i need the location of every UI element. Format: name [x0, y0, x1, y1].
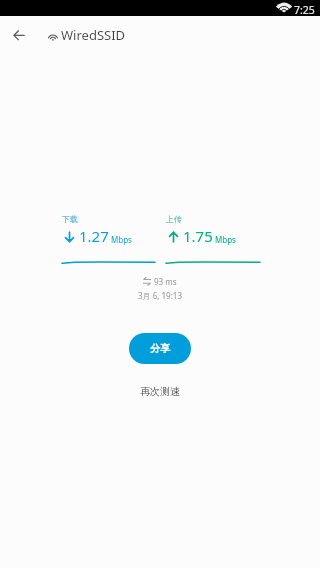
staticText: 1.27 — [79, 226, 109, 246]
staticText: 分享 — [150, 342, 170, 355]
staticText: 7:25 — [294, 3, 315, 17]
staticText: 上传 — [166, 214, 182, 224]
button[interactable]: WiredSSID — [48, 20, 126, 50]
button[interactable]: Back — [1, 17, 37, 53]
staticText: 再次测速 — [140, 385, 180, 398]
staticText: 1.75 — [183, 226, 213, 246]
staticText: 3月 6, 19:13 — [0, 290, 320, 301]
staticText: Mbps — [215, 234, 236, 245]
staticText: 下载 — [62, 214, 78, 224]
staticText: WiredSSID — [61, 26, 126, 44]
staticText: Mbps — [111, 234, 132, 245]
staticText: 93 ms — [154, 276, 177, 287]
button[interactable]: 分享 — [129, 333, 191, 364]
button[interactable]: 再次测速 — [126, 380, 194, 403]
